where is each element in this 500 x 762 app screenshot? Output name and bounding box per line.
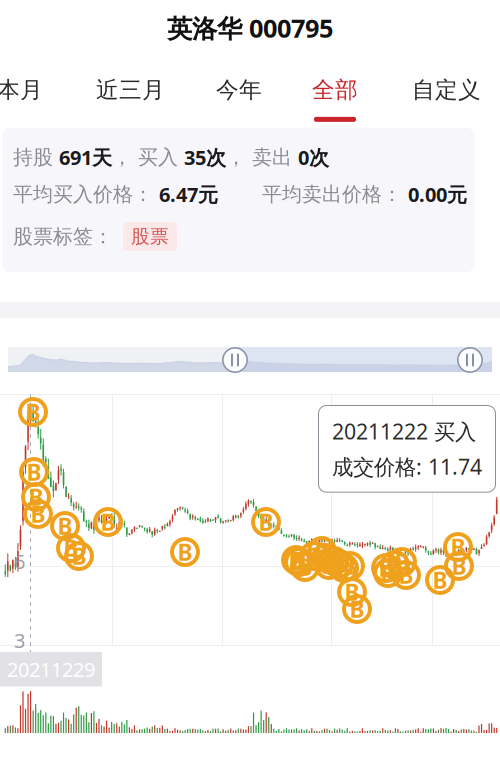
staticText: B — [26, 457, 41, 487]
staticText: B — [30, 499, 45, 529]
button[interactable]: 英洛华 000795 — [0, 0, 500, 56]
staticText: B — [349, 594, 364, 624]
staticText: B — [380, 558, 395, 588]
staticText: B — [291, 547, 306, 577]
staticText: 20211222 买入 — [332, 417, 476, 445]
button[interactable]: 今年 — [216, 56, 262, 122]
staticText: B — [331, 549, 346, 579]
staticText: 股票 — [131, 225, 169, 248]
staticText: 35次 — [184, 144, 226, 171]
staticText: ， — [112, 145, 138, 170]
staticText: 6 — [14, 548, 25, 575]
staticText: 本月 — [0, 76, 43, 104]
staticText: 持股 — [13, 145, 59, 170]
staticText: B — [378, 553, 393, 583]
staticText: ， — [226, 145, 252, 170]
staticText: B — [318, 543, 333, 573]
staticText: 6.47元 — [159, 181, 218, 208]
staticText: 0.00元 — [408, 181, 467, 208]
staticText: 成交价格: 11.74 — [332, 452, 482, 481]
staticText: 20211229 — [7, 656, 95, 683]
staticText: 买入 — [138, 145, 184, 170]
button[interactable]: 全部 — [312, 56, 358, 122]
staticText: B — [100, 507, 115, 537]
staticText: B — [28, 482, 43, 512]
staticText: B — [321, 550, 336, 580]
staticText: B — [71, 541, 86, 571]
staticText: B — [336, 553, 351, 583]
button[interactable]: Range handle — [457, 347, 483, 373]
staticText: B — [451, 551, 466, 581]
staticText: 近三月 — [96, 76, 165, 104]
staticText: 自定义 — [412, 76, 481, 104]
staticText: 0次 — [298, 144, 329, 171]
staticText: B — [297, 552, 312, 582]
staticText: B — [314, 536, 329, 566]
staticText: B — [344, 577, 359, 607]
staticText: B — [288, 545, 303, 575]
staticText: B — [258, 507, 273, 537]
button[interactable]: 本月 — [0, 56, 43, 122]
staticText: B — [25, 397, 40, 427]
staticText: B — [398, 560, 413, 590]
staticText: B — [450, 532, 465, 562]
staticText: B — [57, 511, 72, 541]
staticText: 英洛华 000795 — [167, 11, 333, 45]
staticText: 今年 — [216, 76, 262, 104]
staticText: B — [306, 541, 321, 571]
staticText: B — [394, 547, 409, 577]
staticText: 平均买入价格： — [13, 182, 159, 207]
staticText: B — [387, 550, 402, 580]
staticText: 全部 — [312, 76, 358, 104]
button[interactable]: 近三月 — [96, 56, 165, 122]
staticText: B — [177, 537, 192, 567]
staticText: 股票标签： — [13, 224, 113, 249]
staticText: 平均卖出价格： — [262, 182, 408, 207]
staticText: 3 — [14, 627, 25, 654]
button[interactable]: 自定义 — [412, 56, 481, 122]
button[interactable]: Range handle — [222, 347, 248, 373]
staticText: B — [342, 551, 357, 581]
staticText: B — [326, 546, 341, 576]
staticText: B — [432, 565, 447, 595]
staticText: 691天 — [59, 144, 112, 171]
staticText: 卖出 — [252, 145, 298, 170]
staticText: B — [63, 533, 78, 563]
